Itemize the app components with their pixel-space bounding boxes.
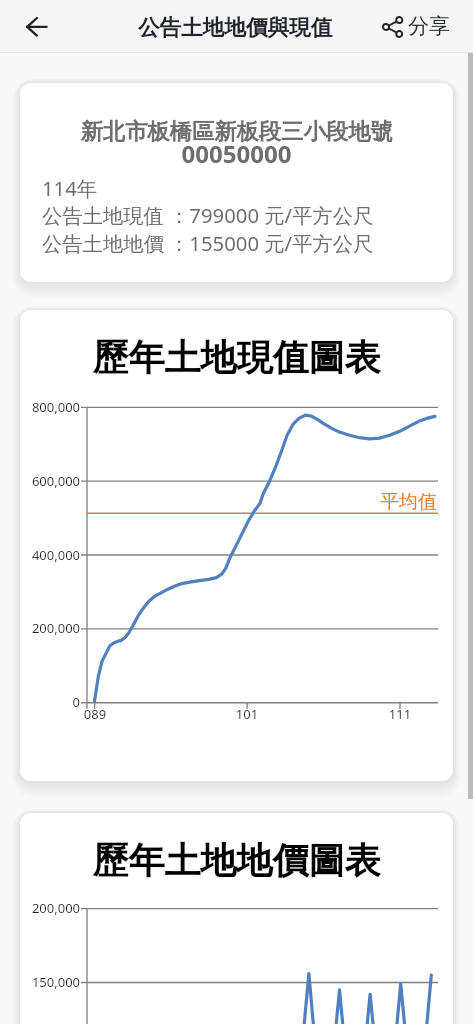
staticText: 歷年土地地價圖表 bbox=[20, 838, 453, 883]
staticText: 00050000 bbox=[20, 137, 453, 170]
staticText: 平均值 bbox=[380, 490, 437, 514]
staticText: 600,000 bbox=[22, 472, 80, 490]
staticText: 200,000 bbox=[22, 619, 80, 637]
button[interactable]: Back bbox=[14, 4, 60, 50]
staticText: 歷年土地現值圖表 bbox=[20, 335, 453, 380]
staticText: 公告土地地價與現值 bbox=[138, 14, 333, 41]
staticText: 200,000 bbox=[22, 899, 80, 917]
staticText: 089 bbox=[65, 705, 125, 723]
staticText: 分享 bbox=[408, 13, 450, 39]
staticText: 101 bbox=[217, 705, 277, 723]
staticText: 150,000 bbox=[22, 973, 80, 991]
staticText: 新北市板橋區新板段三小段地號 bbox=[20, 118, 453, 146]
staticText: 400,000 bbox=[22, 546, 80, 564]
staticText: 114年 公告土地現值 ：799000 元/平方公尺 公告土地地價 ：15500… bbox=[42, 174, 374, 257]
staticText: 0 bbox=[22, 693, 80, 711]
button[interactable]: 分享 bbox=[381, 4, 447, 49]
staticText: 800,000 bbox=[22, 398, 80, 416]
staticText: 111 bbox=[370, 705, 430, 723]
